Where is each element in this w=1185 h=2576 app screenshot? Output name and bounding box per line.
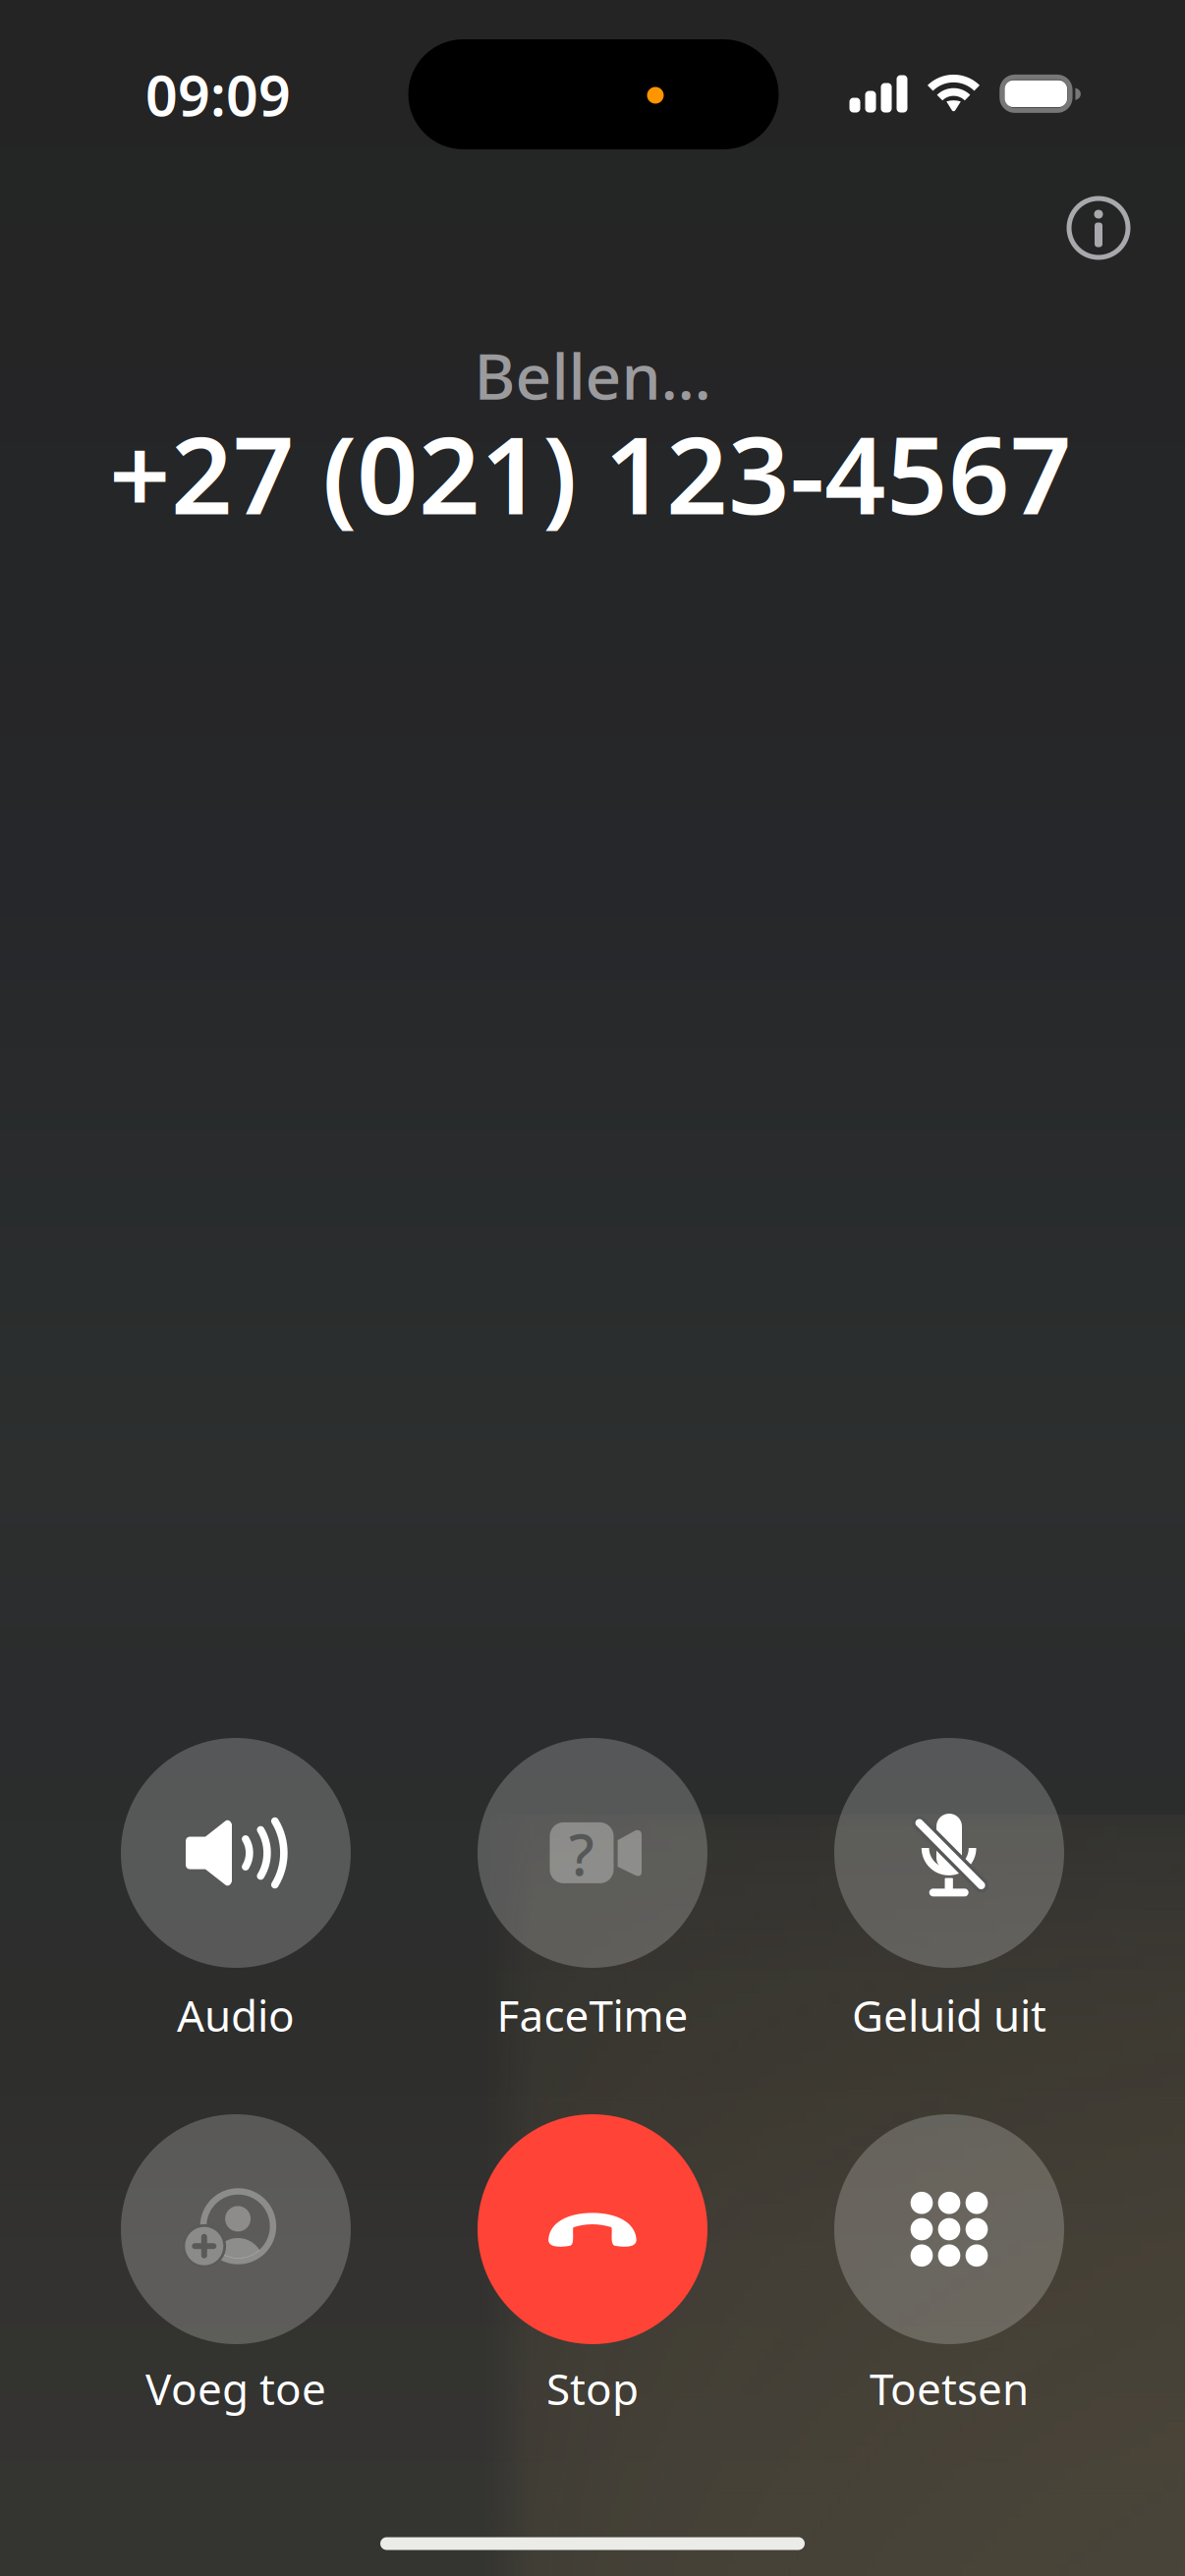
staticText: Toetsen [870, 2360, 1029, 2417]
staticText: FaceTime [497, 1986, 688, 2044]
button[interactable]: Stop [415, 2114, 770, 2462]
staticText: Stop [546, 2360, 639, 2417]
button[interactable]: Voeg toe [58, 2114, 414, 2462]
staticText: Geluid uit [852, 1986, 1046, 2044]
button[interactable]: Audio [58, 1738, 414, 2086]
button[interactable]: Info [1040, 169, 1157, 287]
button[interactable]: Toetsen [771, 2114, 1127, 2462]
staticText: ? [569, 1816, 594, 1891]
button[interactable]: Geluid uit [771, 1738, 1127, 2086]
staticText: Audio [177, 1986, 295, 2044]
staticText: Bellen... [474, 334, 711, 417]
staticText: Voeg toe [145, 2360, 326, 2417]
staticText: +27 (021) 123-4567 [109, 401, 1072, 544]
staticText: 09:09 [145, 57, 291, 132]
button[interactable]: ? [415, 1738, 770, 2086]
